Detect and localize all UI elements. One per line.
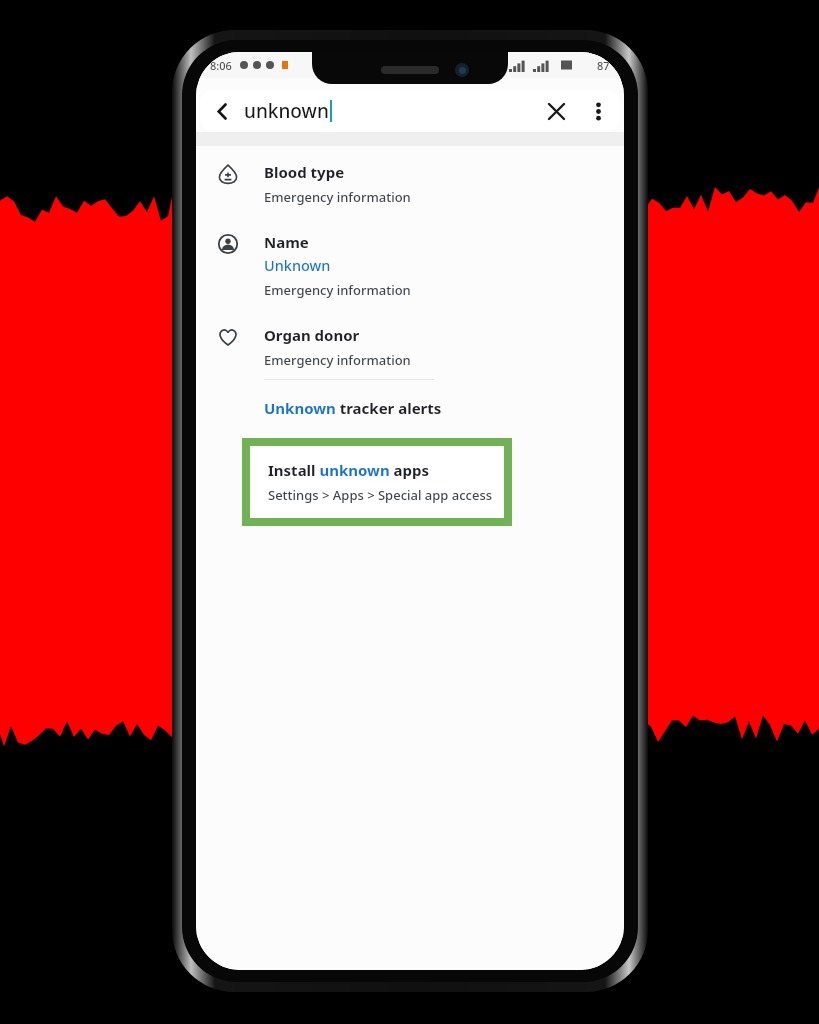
staticText: Unknown xyxy=(264,255,331,275)
staticText: Emergency information xyxy=(264,188,411,206)
staticText: Settings > Apps > Special app access xyxy=(268,486,493,504)
button[interactable]: Unknown tracker alerts xyxy=(196,398,624,418)
staticText: Install unknown apps xyxy=(268,460,430,480)
staticText: Emergency information xyxy=(264,281,411,299)
button[interactable]: More options xyxy=(578,91,618,131)
staticText: Organ donor xyxy=(264,325,360,345)
button[interactable]: Name xyxy=(196,216,624,309)
staticText: 8:06 xyxy=(210,58,232,73)
button[interactable]: Install unknown apps xyxy=(242,438,512,526)
staticText: Name xyxy=(264,232,309,252)
button[interactable]: Blood type xyxy=(196,146,624,216)
button[interactable]: Clear xyxy=(534,90,578,132)
staticText: unknown xyxy=(244,98,329,124)
staticText: Emergency information xyxy=(264,351,411,369)
staticText: Unknown tracker alerts xyxy=(264,398,442,418)
staticText: 87 xyxy=(597,58,610,73)
staticText: Blood type xyxy=(264,162,345,182)
button[interactable]: Organ donor xyxy=(196,309,624,380)
button[interactable]: Back xyxy=(200,90,244,132)
